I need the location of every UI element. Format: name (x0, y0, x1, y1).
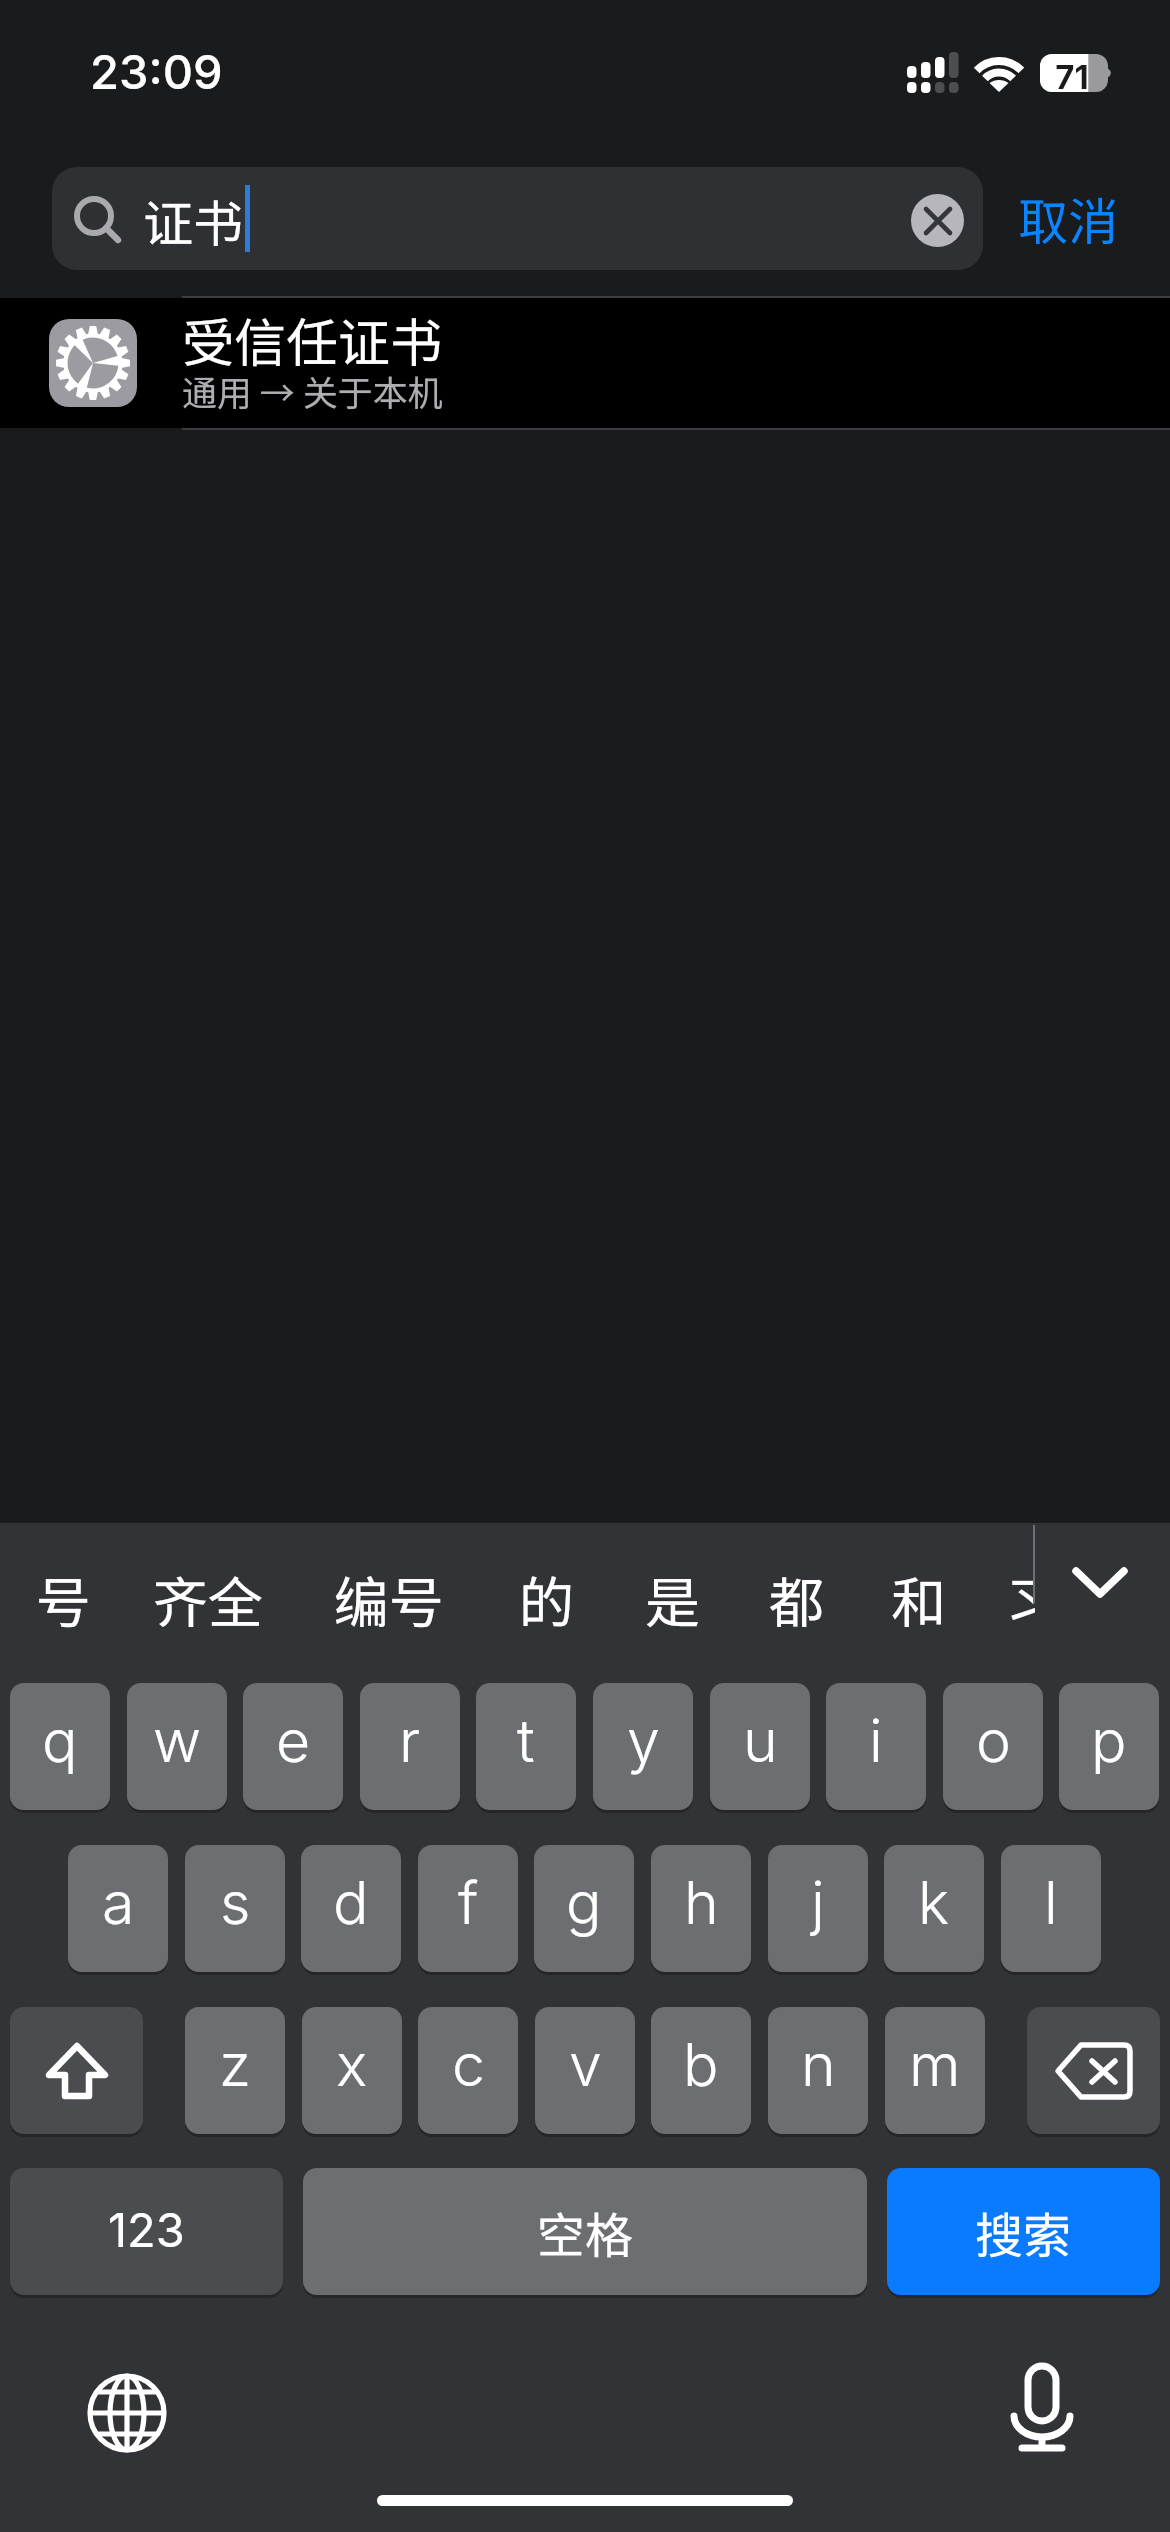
button[interactable]: Switch keyboard (86, 2372, 168, 2454)
staticText: 通用 → 关于本机 (182, 365, 443, 416)
button[interactable]: w (127, 1683, 227, 1810)
button[interactable]: 证书 (52, 167, 983, 270)
button[interactable]: c (418, 2007, 518, 2134)
button[interactable]: p (1059, 1683, 1159, 1810)
button[interactable]: 取消 (1018, 182, 1118, 254)
button[interactable]: q (10, 1683, 110, 1810)
button[interactable]: 都 (769, 1559, 825, 1639)
button[interactable]: Backspace (1027, 2007, 1160, 2134)
staticText: 123 (108, 2201, 185, 2258)
button[interactable]: t (476, 1683, 576, 1810)
staticText: 号 (36, 1559, 92, 1639)
staticText: c (452, 2029, 485, 2100)
staticText: 都 (769, 1559, 825, 1639)
button[interactable]: g (534, 1845, 634, 1972)
staticText: y (627, 1705, 660, 1776)
button[interactable]: 的 (519, 1559, 575, 1639)
button[interactable]: Dictation (1010, 2363, 1074, 2455)
staticText: z (219, 2029, 252, 2100)
button[interactable]: Shift (10, 2007, 143, 2134)
staticText: g (566, 1867, 602, 1938)
button[interactable]: Hide suggestions (1068, 1553, 1132, 1617)
staticText: 受信任证书 (182, 302, 443, 377)
staticText: 证书 (143, 184, 243, 256)
button[interactable]: e (243, 1683, 343, 1810)
staticText: s (220, 1867, 251, 1938)
button[interactable]: n (768, 2007, 868, 2134)
staticText: u (743, 1705, 778, 1776)
staticText: m (909, 2029, 961, 2100)
staticText: 23:09 (90, 43, 223, 100)
staticText: 编号 (334, 1559, 445, 1639)
staticText: l (1044, 1867, 1058, 1938)
staticText: w (153, 1705, 202, 1776)
button[interactable]: r (360, 1683, 460, 1810)
staticText: e (276, 1705, 311, 1776)
staticText: q (42, 1705, 78, 1776)
button[interactable]: d (301, 1845, 401, 1972)
button[interactable]: v (535, 2007, 635, 2134)
button[interactable]: j (768, 1845, 868, 1972)
button[interactable]: i (826, 1683, 926, 1810)
button[interactable]: x (302, 2007, 402, 2134)
button[interactable]: y (593, 1683, 693, 1810)
button[interactable]: k (884, 1845, 984, 1972)
button[interactable]: u (710, 1683, 810, 1810)
staticText: 空格 (537, 2197, 634, 2267)
staticText: x (336, 2029, 368, 2100)
staticText: 的 (519, 1559, 575, 1639)
staticText: b (683, 2029, 719, 2100)
button[interactable]: 123 (10, 2168, 283, 2295)
button[interactable]: s (185, 1845, 285, 1972)
staticText: j (811, 1867, 825, 1938)
button[interactable]: Clear text (911, 194, 964, 247)
button[interactable]: l (1001, 1845, 1101, 1972)
button[interactable]: o (943, 1683, 1043, 1810)
staticText: k (918, 1867, 950, 1938)
button[interactable]: b (651, 2007, 751, 2134)
button[interactable]: 受信任证书 (0, 298, 1170, 428)
staticText: 搜索 (975, 2197, 1072, 2267)
button[interactable]: a (68, 1845, 168, 1972)
staticText: d (333, 1867, 369, 1938)
button[interactable]: m (885, 2007, 985, 2134)
staticText: i (869, 1705, 883, 1776)
staticText: n (801, 2029, 836, 2100)
staticText: 习 (1006, 1559, 1035, 1629)
staticText: 是 (645, 1559, 701, 1639)
button[interactable]: 号 (36, 1559, 92, 1639)
button[interactable]: 是 (645, 1559, 701, 1639)
button[interactable]: 和 (891, 1559, 947, 1639)
staticText: 齐全 (153, 1559, 264, 1639)
staticText: 和 (891, 1559, 947, 1639)
button[interactable]: 齐全 (153, 1559, 264, 1639)
staticText: r (399, 1705, 421, 1776)
staticText: h (684, 1867, 719, 1938)
button[interactable]: 空格 (303, 2168, 867, 2295)
button[interactable]: 搜索 (887, 2168, 1160, 2295)
staticText: f (458, 1867, 479, 1938)
button[interactable]: 编号 (334, 1559, 445, 1639)
staticText: 71 (1048, 57, 1096, 97)
button[interactable]: h (651, 1845, 751, 1972)
staticText: t (517, 1705, 535, 1776)
staticText: a (102, 1867, 135, 1938)
staticText: v (569, 2029, 602, 2100)
staticText: 取消 (1018, 182, 1118, 254)
staticText: o (976, 1705, 1011, 1776)
button[interactable]: z (185, 2007, 285, 2134)
staticText: p (1091, 1705, 1127, 1776)
button[interactable]: f (418, 1845, 518, 1972)
